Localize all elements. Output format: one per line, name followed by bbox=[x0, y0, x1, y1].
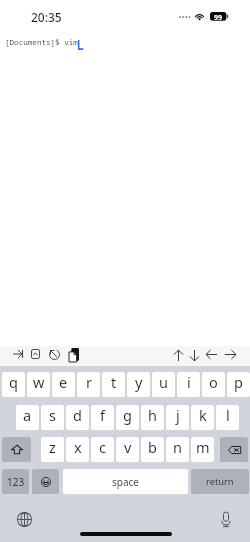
staticText: o bbox=[209, 372, 218, 392]
button[interactable]: w bbox=[27, 372, 50, 397]
staticText: [Documents]$ vim bbox=[5, 37, 78, 47]
staticText: z bbox=[49, 437, 56, 457]
staticText: 20:35 bbox=[31, 9, 62, 25]
staticText: q bbox=[9, 372, 18, 392]
button[interactable]: t bbox=[102, 372, 125, 397]
button[interactable]: e bbox=[52, 372, 75, 397]
button[interactable]: n bbox=[166, 437, 189, 462]
button[interactable]: Paste bbox=[66, 346, 82, 366]
staticText: c bbox=[99, 437, 106, 457]
button[interactable]: g bbox=[116, 405, 139, 430]
staticText: h bbox=[148, 405, 157, 425]
button[interactable]: space bbox=[63, 469, 188, 494]
staticText: w bbox=[33, 372, 45, 392]
button[interactable]: p bbox=[227, 372, 250, 397]
staticText: p bbox=[234, 372, 243, 392]
staticText: u bbox=[159, 372, 168, 392]
button[interactable]: v bbox=[116, 437, 139, 462]
button[interactable]: Emoji bbox=[32, 469, 59, 494]
staticText: y bbox=[135, 372, 143, 392]
button[interactable]: d bbox=[66, 405, 89, 430]
staticText: a bbox=[23, 405, 32, 425]
button[interactable]: q bbox=[2, 372, 25, 397]
staticText: x bbox=[74, 437, 82, 457]
button[interactable]: k bbox=[191, 405, 214, 430]
button[interactable]: History bbox=[46, 346, 63, 366]
button[interactable]: j bbox=[166, 405, 189, 430]
button[interactable]: z bbox=[41, 437, 64, 462]
staticText: g bbox=[123, 405, 132, 425]
staticText: s bbox=[49, 405, 56, 425]
staticText: i bbox=[187, 372, 191, 392]
button[interactable]: Backspace bbox=[220, 437, 248, 462]
button[interactable]: Move right bbox=[222, 346, 239, 366]
staticText: r bbox=[86, 372, 92, 392]
button[interactable]: Move left bbox=[203, 346, 220, 366]
button[interactable]: m bbox=[191, 437, 214, 462]
button[interactable]: f bbox=[91, 405, 114, 430]
button[interactable]: r bbox=[77, 372, 100, 397]
button[interactable]: i bbox=[177, 372, 200, 397]
button[interactable]: Control bbox=[28, 346, 43, 366]
button[interactable]: y bbox=[127, 372, 150, 397]
button[interactable]: Move up bbox=[171, 346, 186, 366]
button[interactable]: h bbox=[141, 405, 164, 430]
staticText: t bbox=[111, 372, 117, 392]
button[interactable]: c bbox=[91, 437, 114, 462]
staticText: b bbox=[148, 437, 157, 457]
button[interactable]: 123 bbox=[2, 469, 29, 494]
staticText: f bbox=[100, 405, 105, 425]
button[interactable]: Move down bbox=[187, 346, 202, 366]
staticText: return bbox=[206, 475, 234, 488]
button[interactable]: x bbox=[66, 437, 89, 462]
staticText: e bbox=[59, 372, 68, 392]
button[interactable]: Tab bbox=[10, 346, 26, 366]
button[interactable]: u bbox=[152, 372, 175, 397]
staticText: m bbox=[196, 437, 210, 457]
button[interactable]: o bbox=[202, 372, 225, 397]
staticText: space bbox=[112, 475, 139, 489]
staticText: d bbox=[73, 405, 82, 425]
button[interactable]: b bbox=[141, 437, 164, 462]
button[interactable]: Shift bbox=[2, 437, 31, 462]
staticText: 123 bbox=[7, 475, 25, 489]
button[interactable]: return bbox=[191, 469, 249, 494]
staticText: 99 bbox=[214, 13, 223, 21]
button[interactable]: s bbox=[41, 405, 64, 430]
staticText: j bbox=[176, 405, 180, 425]
staticText: v bbox=[124, 437, 132, 457]
button[interactable]: Dictation bbox=[214, 508, 237, 531]
staticText: k bbox=[199, 405, 207, 425]
button[interactable]: l bbox=[216, 405, 239, 430]
button[interactable]: Switch language bbox=[13, 508, 36, 531]
staticText: n bbox=[173, 437, 182, 457]
button[interactable]: a bbox=[16, 405, 39, 430]
staticText: l bbox=[226, 405, 230, 425]
